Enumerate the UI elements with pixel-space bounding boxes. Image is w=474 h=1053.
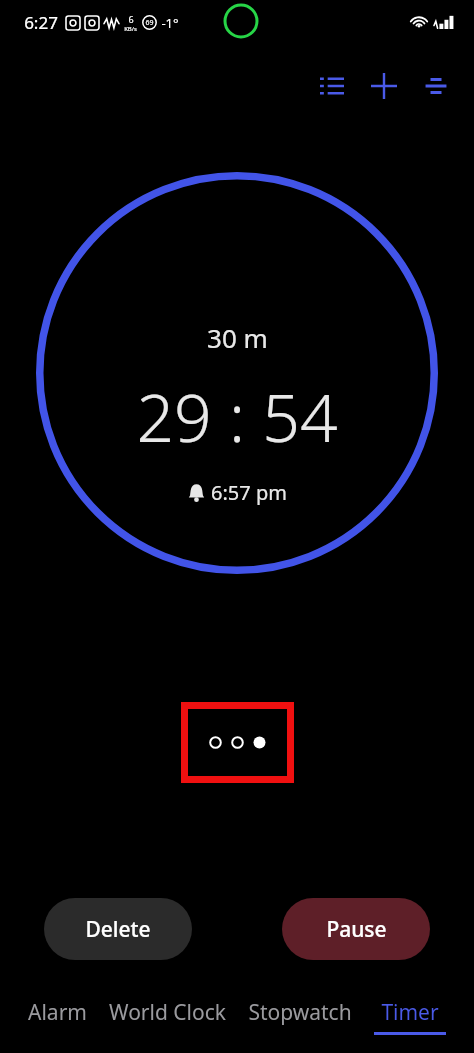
staticText: Pause (326, 915, 387, 944)
staticText: Alarm (28, 998, 87, 1027)
button[interactable]: Add timer (360, 62, 408, 110)
button[interactable]: Timer list (308, 62, 356, 110)
staticText: 6 (128, 13, 134, 25)
staticText: 6:57 pm (211, 479, 287, 506)
button[interactable]: Delete (44, 898, 192, 960)
button[interactable]: More options (412, 62, 460, 110)
button[interactable]: World Clock (107, 996, 228, 1029)
button[interactable]: Timer (372, 996, 448, 1037)
staticText: World Clock (109, 998, 226, 1027)
staticText: 29 : 54 (136, 371, 338, 461)
staticText: KB/s (124, 25, 137, 33)
staticText: 30 m (207, 320, 268, 355)
staticText: 69 (145, 18, 154, 28)
button[interactable]: Alarm (26, 996, 89, 1029)
staticText: Timer (381, 998, 439, 1027)
button[interactable]: Pause (282, 898, 430, 960)
staticText: 6:27 (24, 11, 58, 34)
button[interactable]: Stopwatch (246, 996, 354, 1029)
staticText: Stopwatch (248, 998, 352, 1027)
staticText: Delete (85, 915, 151, 944)
staticText: -1° (161, 14, 179, 32)
